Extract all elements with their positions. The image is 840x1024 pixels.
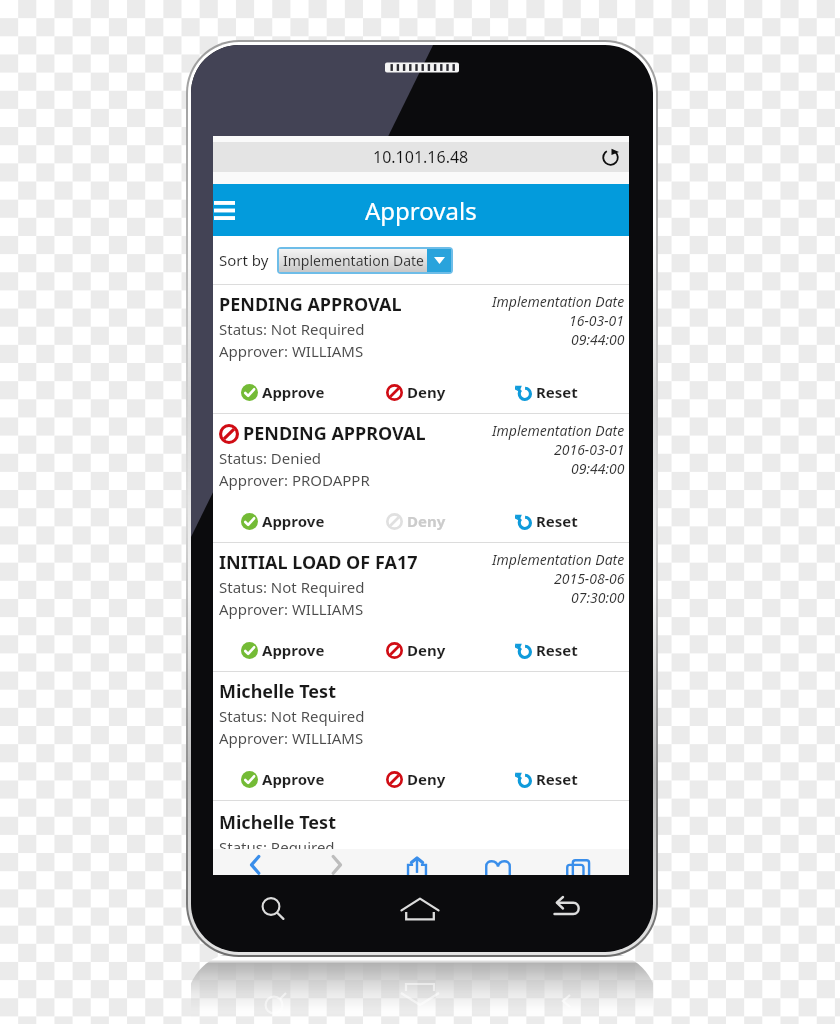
button[interactable]: Search: [191, 875, 345, 946]
staticText: Approver: WILLIAMS: [219, 728, 364, 748]
staticText: Status: Not Required: [219, 319, 365, 339]
button[interactable]: Bookmarks: [457, 849, 538, 875]
button[interactable]: Approve: [213, 504, 351, 538]
button[interactable]: Implementation Date: [279, 249, 451, 272]
button[interactable]: Reload: [597, 144, 623, 170]
staticText: Approver: WILLIAMS: [219, 599, 364, 619]
button[interactable]: Back: [216, 849, 296, 875]
staticText: 10.101.16.48: [373, 146, 469, 168]
staticText: Sort by: [219, 250, 269, 270]
button[interactable]: Share: [376, 849, 457, 875]
staticText: Implementation Date: [492, 292, 625, 311]
button[interactable]: Deny: [351, 633, 490, 667]
staticText: PENDING APPROVAL: [219, 292, 402, 317]
staticText: Approvals: [365, 194, 477, 227]
staticText: Reset: [536, 511, 578, 531]
staticText: 2016-03-01: [554, 440, 625, 459]
staticText: Status: Not Required: [219, 706, 365, 726]
staticText: 09:44:00: [571, 459, 625, 478]
staticText: 07:30:00: [571, 588, 625, 607]
button[interactable]: Approve: [213, 762, 351, 796]
staticText: 09:44:00: [571, 330, 625, 349]
button[interactable]: Approve: [213, 633, 351, 667]
staticText: Status: Denied: [219, 448, 322, 468]
staticText: 2015-08-06: [554, 569, 625, 588]
staticText: Michelle Test: [219, 679, 336, 704]
button[interactable]: Reset: [490, 633, 629, 667]
button[interactable]: Menu: [213, 184, 247, 236]
button[interactable]: Deny: [351, 762, 490, 796]
staticText: Deny: [407, 382, 446, 402]
staticText: Implementation Date: [492, 550, 625, 569]
staticText: PENDING APPROVAL: [243, 421, 426, 446]
button[interactable]: Tabs: [538, 849, 619, 875]
button[interactable]: Home: [345, 875, 499, 946]
staticText: Reset: [536, 769, 578, 789]
staticText: Michelle Test: [219, 810, 336, 835]
staticText: Approver: PRODAPPR: [219, 470, 370, 490]
button[interactable]: Reset: [490, 375, 629, 409]
staticText: Approve: [262, 640, 325, 660]
staticText: Deny: [407, 640, 446, 660]
staticText: 16-03-01: [569, 311, 625, 330]
button[interactable]: Approve: [213, 375, 351, 409]
button[interactable]: Reset: [490, 504, 629, 538]
button[interactable]: Deny: [351, 504, 490, 538]
staticText: Approve: [262, 382, 325, 402]
button[interactable]: Reset: [490, 762, 629, 796]
button[interactable]: Forward: [296, 849, 376, 875]
staticText: INITIAL LOAD OF FA17: [219, 550, 418, 575]
staticText: Status: Required: [219, 837, 335, 849]
staticText: Status: Not Required: [219, 577, 365, 597]
button[interactable]: Deny: [351, 375, 490, 409]
staticText: Approve: [262, 769, 325, 789]
staticText: Implementation Date: [283, 251, 424, 270]
staticText: Reset: [536, 640, 578, 660]
staticText: Deny: [407, 769, 446, 789]
staticText: Implementation Date: [492, 421, 625, 440]
button[interactable]: Back: [499, 875, 653, 946]
staticText: Reset: [536, 382, 578, 402]
staticText: Deny: [407, 511, 446, 531]
staticText: Approve: [262, 511, 325, 531]
staticText: Approver: WILLIAMS: [219, 341, 364, 361]
